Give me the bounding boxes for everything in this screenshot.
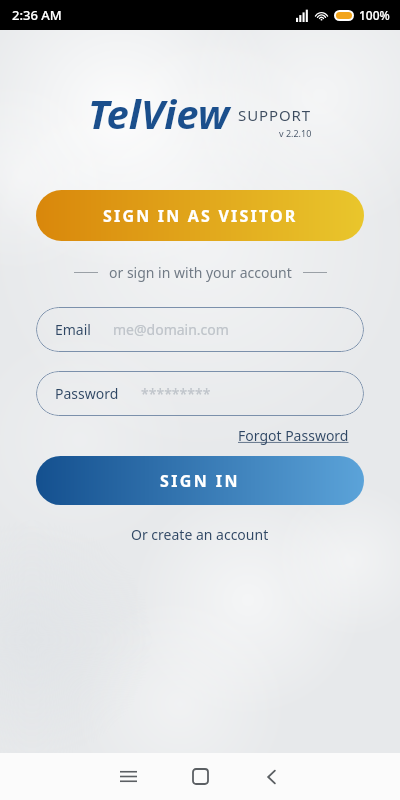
staticText: Password <box>55 384 119 403</box>
staticText: or sign in with your account <box>109 263 292 282</box>
staticText: me@domain.com <box>113 320 229 339</box>
staticText: v 2.2.10 <box>279 127 312 139</box>
staticText: Or create an account <box>131 525 269 544</box>
button[interactable]: Or create an account <box>127 521 273 548</box>
button[interactable]: SIGN IN AS VISITOR <box>36 190 364 241</box>
staticText: SUPPORT <box>238 105 312 125</box>
staticText: SIGN IN <box>160 470 240 492</box>
button[interactable]: Password <box>36 371 364 416</box>
button[interactable]: Email <box>36 307 364 352</box>
button[interactable]: Recents <box>99 753 157 800</box>
staticText: TelView <box>88 86 230 140</box>
staticText: Forgot Password <box>238 426 349 445</box>
staticText: 100% <box>359 7 390 23</box>
button[interactable]: Forgot Password <box>236 424 351 447</box>
staticText: ********* <box>141 384 211 403</box>
button[interactable]: SIGN IN <box>36 456 364 505</box>
staticText: Email <box>55 320 91 339</box>
button[interactable]: Back <box>243 753 301 800</box>
staticText: SIGN IN AS VISITOR <box>103 205 298 227</box>
staticText: 2:36 AM <box>12 6 62 24</box>
button[interactable]: Home <box>171 753 229 800</box>
